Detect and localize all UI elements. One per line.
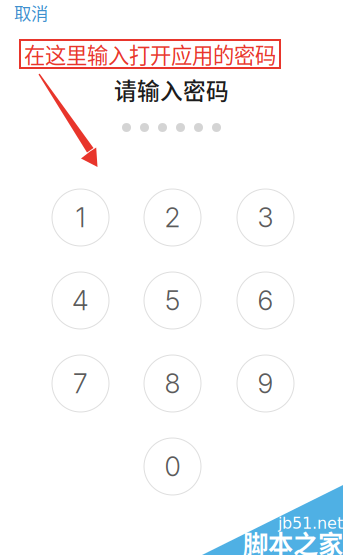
staticText: 1 <box>75 201 85 234</box>
button[interactable]: 2 <box>144 189 201 246</box>
staticText: 5 <box>165 284 180 317</box>
staticText: 9 <box>257 367 273 400</box>
button[interactable]: 1 <box>52 189 109 246</box>
staticText: 在这里输入打开应用的密码 <box>24 39 276 69</box>
button[interactable]: 0 <box>144 438 201 495</box>
staticText: 2 <box>164 201 180 234</box>
button[interactable]: 5 <box>144 272 201 329</box>
button[interactable]: 4 <box>52 272 109 329</box>
staticText: jb51.net <box>278 514 343 533</box>
button[interactable]: 7 <box>52 355 109 412</box>
staticText: 取消 <box>14 0 48 25</box>
staticText: 4 <box>72 284 89 317</box>
button[interactable]: 3 <box>237 189 294 246</box>
staticText: 0 <box>164 450 180 483</box>
staticText: 请输入密码 <box>114 73 229 106</box>
staticText: 脚本之家 <box>243 524 343 555</box>
button[interactable]: 6 <box>237 272 294 329</box>
button[interactable]: 9 <box>237 355 294 412</box>
staticText: 3 <box>257 201 273 234</box>
staticText: 6 <box>257 284 273 317</box>
button[interactable]: 8 <box>144 355 201 412</box>
staticText: 8 <box>164 367 180 400</box>
button[interactable]: 取消 <box>4 0 58 33</box>
staticText: 7 <box>73 367 88 400</box>
